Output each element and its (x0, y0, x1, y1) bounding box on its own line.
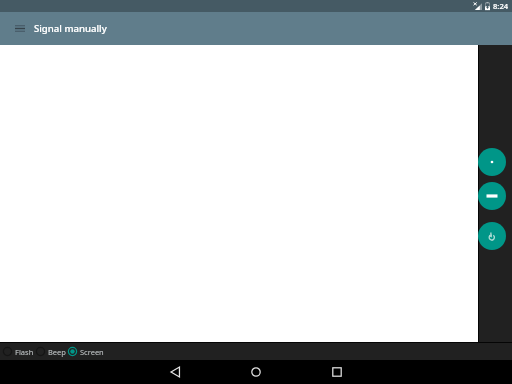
button[interactable]: Dash (478, 182, 506, 210)
button[interactable]: Screen (68, 343, 104, 360)
button[interactable]: Dot (478, 148, 506, 176)
button[interactable]: Home (224, 360, 288, 384)
staticText: 8:24 (493, 1, 509, 11)
button[interactable]: Flash (3, 343, 34, 360)
staticText: Flash (15, 347, 34, 357)
button[interactable]: Beep (36, 343, 66, 360)
button[interactable]: Recent apps (305, 360, 369, 384)
button[interactable]: Undo (478, 222, 506, 250)
staticText: Signal manually (34, 22, 107, 35)
staticText: Beep (48, 347, 66, 357)
staticText: Screen (80, 347, 104, 357)
button[interactable]: Open navigation drawer (9, 12, 31, 45)
button[interactable]: Back (143, 360, 207, 384)
